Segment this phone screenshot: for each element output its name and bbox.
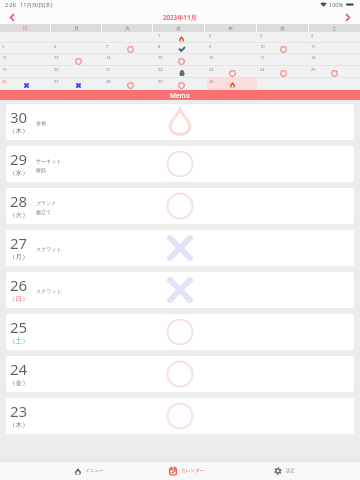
button[interactable]: 28 (104, 78, 156, 90)
button[interactable]: 30 (6, 104, 354, 140)
staticText: 2023年11月 (163, 13, 197, 21)
staticText: 17 (260, 55, 265, 60)
button[interactable]: 1 (156, 32, 207, 43)
staticText: 29 (10, 149, 28, 169)
button[interactable]: 29 (6, 146, 354, 182)
staticText: 水 (176, 25, 181, 31)
staticText: 26 (2, 79, 7, 84)
button[interactable]: 9 (207, 43, 258, 54)
staticText: 土 (332, 25, 337, 31)
button[interactable]: 22 (156, 66, 207, 78)
staticText: 23 (209, 67, 214, 72)
button[interactable]: 14 (104, 54, 156, 66)
button[interactable]: 27 (52, 78, 104, 90)
button[interactable]: 4 (309, 32, 360, 43)
button[interactable]: 11 (309, 43, 360, 54)
button[interactable]: 8 (156, 43, 207, 54)
staticText: 13 (54, 55, 59, 60)
staticText: （水） (9, 169, 29, 177)
button[interactable]: 26 (0, 78, 52, 90)
staticText: 2:26 (5, 1, 16, 8)
button[interactable]: 26 (6, 272, 354, 308)
staticText: 24 (260, 67, 265, 72)
staticText: 19 (2, 67, 7, 72)
staticText: 25 (311, 67, 316, 72)
staticText: 29 (158, 79, 163, 84)
staticText: 18 (311, 55, 316, 60)
button[interactable]: 23 (207, 66, 258, 78)
button[interactable]: 15 (156, 54, 207, 66)
button[interactable]: カレンダー (138, 462, 236, 480)
button[interactable]: 3 (258, 32, 309, 43)
button[interactable]: 5 (0, 43, 52, 54)
staticText: （木） (9, 421, 29, 429)
staticText: 4 (311, 33, 314, 38)
staticText: 木 (228, 25, 233, 31)
staticText: 28 (106, 79, 111, 84)
button[interactable]: 13 (52, 54, 104, 66)
button[interactable]: Memo (0, 90, 360, 100)
button[interactable] (52, 32, 104, 43)
button[interactable]: 12 (0, 54, 52, 66)
staticText: 14 (106, 55, 111, 60)
button[interactable]: 23 (6, 398, 354, 434)
staticText: 7 (106, 44, 109, 49)
button[interactable]: 7 (104, 43, 156, 54)
staticText: （土） (9, 337, 29, 345)
staticText: スクワット (36, 246, 62, 252)
staticText: 火 (125, 25, 130, 31)
staticText: 9 (209, 44, 212, 49)
staticText: 30 (10, 107, 28, 127)
staticText: 5 (2, 44, 5, 49)
staticText: 15 (158, 55, 163, 60)
button[interactable]: 設定 (236, 462, 334, 480)
button[interactable]: Next month (341, 10, 355, 24)
staticText: スクワット (36, 288, 62, 294)
button[interactable]: 6 (52, 43, 104, 54)
staticText: 設定 (286, 468, 296, 474)
button[interactable]: Previous month (5, 10, 19, 24)
staticText: 24 (10, 359, 28, 379)
button[interactable]: 24 (258, 66, 309, 78)
button[interactable]: 2 (207, 32, 258, 43)
staticText: （金） (9, 379, 29, 387)
staticText: 30 (209, 79, 214, 84)
button[interactable] (104, 32, 156, 43)
button[interactable]: 30 (207, 78, 258, 90)
button[interactable]: 28 (6, 188, 354, 224)
staticText: プランク (36, 200, 57, 206)
staticText: 3 (260, 33, 263, 38)
button[interactable]: 27 (6, 230, 354, 266)
staticText: 11 (311, 44, 316, 49)
staticText: 余裕 (36, 120, 46, 126)
button[interactable]: 21 (104, 66, 156, 78)
button[interactable]: 25 (6, 314, 354, 350)
button[interactable]: 24 (6, 356, 354, 392)
staticText: 10 (260, 44, 265, 49)
staticText: メニュー (85, 468, 104, 474)
button[interactable]: 25 (309, 66, 360, 78)
staticText: 腹筋 (36, 167, 46, 173)
button[interactable] (0, 32, 52, 43)
staticText: （月） (9, 253, 29, 261)
staticText: 20 (54, 67, 59, 72)
button[interactable]: 18 (309, 54, 360, 66)
staticText: 2 (209, 33, 212, 38)
button[interactable]: 19 (0, 66, 52, 78)
staticText: 25 (10, 317, 28, 337)
staticText: （日） (9, 295, 29, 303)
button[interactable]: 16 (207, 54, 258, 66)
staticText: Memo (170, 91, 190, 100)
staticText: 8 (158, 44, 161, 49)
staticText: 11月30日(木) (20, 1, 53, 9)
button[interactable]: 10 (258, 43, 309, 54)
staticText: 23 (10, 401, 28, 421)
button[interactable]: メニュー (40, 462, 138, 480)
staticText: （木） (9, 127, 29, 135)
button[interactable]: 29 (156, 78, 207, 90)
button[interactable]: 20 (52, 66, 104, 78)
button[interactable]: 17 (258, 54, 309, 66)
staticText: 27 (10, 233, 28, 253)
